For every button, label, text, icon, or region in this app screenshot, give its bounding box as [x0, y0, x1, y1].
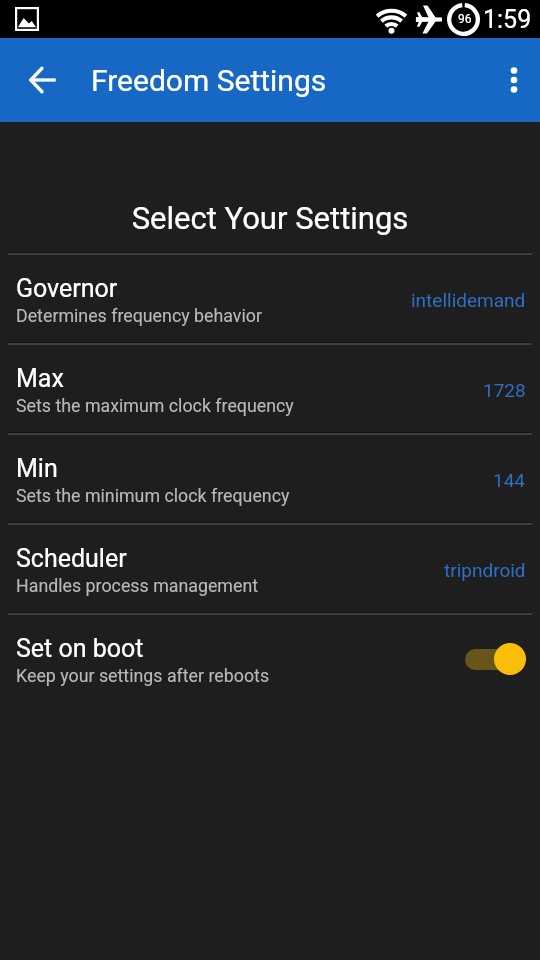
button[interactable]: Max [0, 345, 540, 432]
staticText: Determines frequency behavior [16, 305, 262, 326]
staticText: 144 [493, 469, 526, 491]
staticText: Scheduler [16, 544, 127, 573]
button[interactable]: Min [0, 435, 540, 522]
staticText: Governor [16, 274, 118, 303]
staticText: 1728 [483, 379, 526, 401]
staticText: intellidemand [411, 289, 526, 311]
staticText: Sets the minimum clock frequency [16, 485, 290, 506]
button[interactable]: Set on boot [0, 615, 540, 702]
staticText: Set on boot [16, 634, 144, 663]
staticText: 1:59 [483, 5, 532, 34]
button[interactable]: Governor [0, 255, 540, 342]
staticText: 96 [458, 12, 472, 26]
button[interactable]: More options [486, 53, 540, 107]
staticText: Min [16, 454, 58, 483]
button[interactable]: Set on boot toggle [465, 639, 526, 679]
button[interactable]: Scheduler [0, 525, 540, 612]
staticText: Sets the maximum clock frequency [16, 395, 294, 416]
button[interactable]: Back [14, 52, 70, 108]
staticText: Freedom Settings [91, 63, 327, 98]
staticText: Select Your Settings [0, 200, 540, 236]
staticText: tripndroid [444, 559, 526, 581]
staticText: Keep your settings after reboots [16, 665, 270, 686]
staticText: Handles process management [16, 575, 259, 596]
staticText: Max [16, 364, 64, 393]
